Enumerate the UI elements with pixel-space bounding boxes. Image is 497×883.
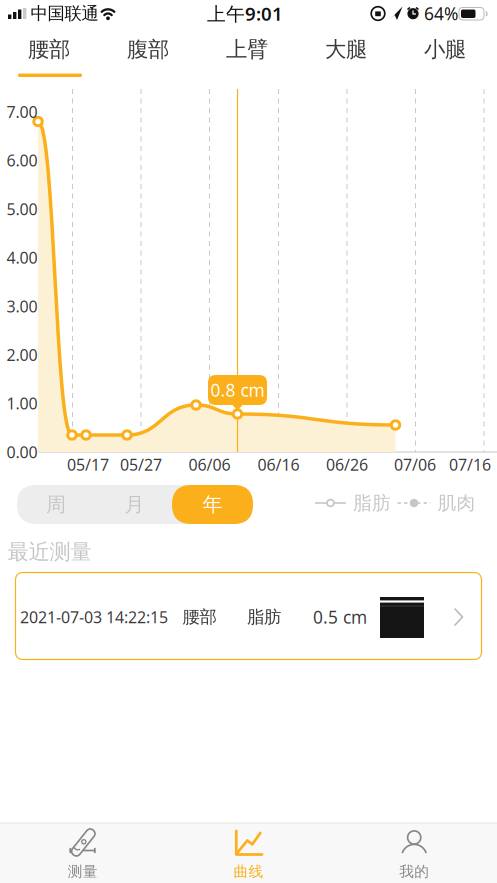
staticText: 小腿 — [424, 36, 466, 63]
staticText: 2021-07-03 14:22:15 — [20, 606, 168, 628]
staticText: 腹部 — [127, 36, 169, 63]
button[interactable]: 测量 — [23, 827, 143, 883]
staticText: 年 — [202, 492, 222, 517]
button[interactable]: 我的 — [354, 827, 474, 883]
staticText: 我的 — [399, 862, 429, 880]
staticText: 月 — [124, 492, 144, 517]
staticText: 曲线 — [233, 862, 263, 880]
staticText: 06/06 — [188, 454, 230, 475]
staticText: 07/06 — [394, 454, 436, 475]
staticText: 上午9:01 — [207, 1, 283, 26]
button[interactable]: 腹部 — [108, 31, 188, 67]
staticText: 0.8 cm — [210, 378, 264, 401]
staticText: 大腿 — [325, 36, 367, 63]
staticText: 0.00 — [6, 441, 37, 463]
staticText: 腰部 — [182, 606, 216, 628]
button[interactable]: 大腿 — [306, 31, 386, 67]
button[interactable]: 2021-07-03 14:22:15 — [15, 572, 482, 660]
staticText: 周 — [46, 492, 66, 517]
button[interactable]: 肌肉 — [397, 491, 475, 514]
staticText: 上臂 — [226, 36, 268, 63]
button[interactable]: 脂肪 — [315, 491, 391, 514]
staticText: 06/16 — [257, 454, 299, 475]
staticText: 1.00 — [6, 393, 37, 414]
staticText: 腰部 — [28, 36, 70, 63]
staticText: 64% — [424, 2, 458, 25]
staticText: 最近测量 — [7, 539, 91, 565]
button[interactable]: 上臂 — [207, 31, 287, 67]
staticText: 0.5 cm — [313, 605, 367, 628]
staticText: 05/17 — [67, 454, 109, 475]
staticText: 肌肉 — [437, 491, 475, 514]
staticText: 脂肪 — [247, 606, 281, 628]
staticText: 6.00 — [6, 150, 37, 171]
staticText: 07/16 — [449, 454, 491, 475]
staticText: 05/27 — [120, 454, 162, 475]
staticText: 4.00 — [6, 247, 37, 268]
button[interactable]: 周 — [17, 485, 95, 524]
staticText: 2.00 — [6, 344, 37, 365]
staticText: 测量 — [68, 862, 98, 880]
staticText: 7.00 — [6, 101, 37, 122]
button[interactable]: 月 — [95, 485, 173, 524]
button[interactable]: 曲线 — [188, 827, 308, 883]
staticText: 06/26 — [326, 454, 368, 475]
button[interactable]: 年 — [172, 485, 253, 524]
staticText: 中国联通 — [30, 3, 98, 24]
staticText: 5.00 — [6, 198, 37, 220]
staticText: 3.00 — [6, 296, 37, 317]
button[interactable]: 腰部 — [9, 31, 89, 67]
button[interactable]: 小腿 — [405, 31, 485, 67]
staticText: 脂肪 — [353, 491, 391, 514]
